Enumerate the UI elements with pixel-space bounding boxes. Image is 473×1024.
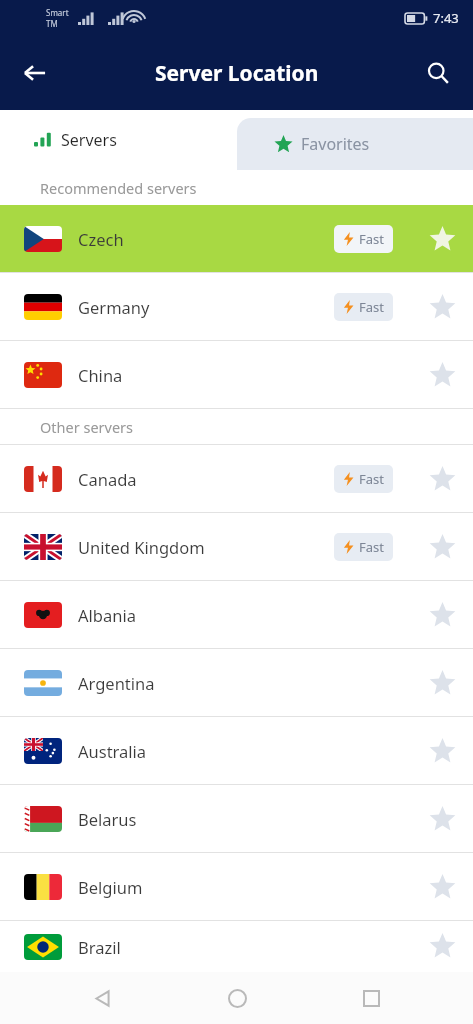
button[interactable]: Favorite China [415, 348, 469, 402]
button[interactable]: Belgium [0, 853, 473, 920]
staticText: Belgium [78, 876, 143, 898]
button[interactable]: Back [12, 50, 58, 96]
staticText: Czech [78, 228, 124, 250]
staticText: Canada [78, 468, 137, 490]
button[interactable]: Favorite Argentina [415, 656, 469, 710]
button[interactable]: Recents [339, 972, 403, 1024]
button[interactable]: Favorite Belarus [415, 792, 469, 846]
button[interactable]: Australia [0, 717, 473, 784]
button[interactable]: Favorite Albania [415, 588, 469, 642]
button[interactable]: Argentina [0, 649, 473, 716]
staticText: Favorites [301, 133, 370, 155]
staticText: Fast [359, 298, 384, 316]
staticText: Germany [78, 296, 150, 318]
staticText: Fast [359, 230, 384, 248]
staticText: Server Location [155, 59, 319, 88]
staticText: Australia [78, 740, 147, 762]
button[interactable]: Belarus [0, 785, 473, 852]
button[interactable]: Favorite Australia [415, 724, 469, 778]
button[interactable]: China [0, 341, 473, 408]
button[interactable]: Favorite United Kingdom [415, 520, 469, 574]
button[interactable]: Brazil [0, 921, 473, 972]
button[interactable]: Favorite Canada [415, 452, 469, 506]
button[interactable]: Servers [0, 110, 237, 170]
staticText: Fast [359, 470, 384, 488]
staticText: Smart [46, 7, 69, 18]
button[interactable]: Favorites [237, 118, 473, 170]
button[interactable]: Favorite Germany [415, 280, 469, 334]
button[interactable]: Albania [0, 581, 473, 648]
staticText: Brazil [78, 936, 121, 958]
button[interactable]: Home [205, 972, 269, 1024]
staticText: Fast [359, 538, 384, 556]
button[interactable]: Favorite Brazil [415, 921, 469, 972]
staticText: Albania [78, 604, 136, 626]
staticText: TM [46, 18, 58, 29]
button[interactable]: Search [415, 50, 461, 96]
button[interactable]: Favorite Belgium [415, 860, 469, 914]
staticText: Servers [61, 129, 117, 151]
staticText: United Kingdom [78, 536, 205, 558]
button[interactable]: Favorite Czech [415, 212, 469, 266]
staticText: Argentina [78, 672, 155, 694]
button[interactable]: Germany [0, 273, 473, 340]
button[interactable]: Canada [0, 445, 473, 512]
staticText: China [78, 364, 123, 386]
staticText: Belarus [78, 808, 137, 830]
button[interactable]: Back [70, 972, 134, 1024]
staticText: 7:43 [433, 9, 459, 27]
button[interactable]: United Kingdom [0, 513, 473, 580]
button[interactable]: Czech [0, 205, 473, 272]
staticText: Other servers [40, 417, 134, 437]
staticText: Recommended servers [40, 178, 197, 198]
